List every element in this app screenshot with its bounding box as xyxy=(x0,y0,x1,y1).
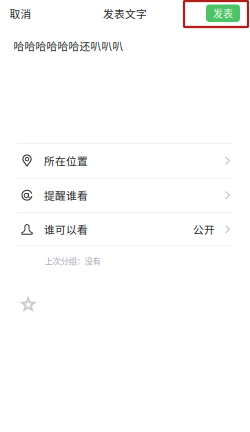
button[interactable]: 提醒谁看 xyxy=(0,178,250,212)
button[interactable]: 所在位置 xyxy=(0,144,250,177)
staticText: 发表文字 xyxy=(103,5,147,21)
staticText: 哈哈哈哈哈哈还叭叭叭 xyxy=(13,38,123,53)
staticText: 所在位置 xyxy=(44,153,88,168)
button[interactable]: 取消 xyxy=(0,0,39,26)
staticText: 发表 xyxy=(213,6,233,20)
staticText: 公开 xyxy=(193,221,215,237)
staticText: 上次分组：没有 xyxy=(44,254,100,267)
staticText: 谁可以看 xyxy=(44,221,88,237)
button[interactable]: Favourite xyxy=(0,267,43,317)
staticText: 取消 xyxy=(9,5,31,21)
button[interactable]: 谁可以看 xyxy=(0,213,250,245)
staticText: 提醒谁看 xyxy=(44,187,88,203)
button[interactable]: 发表 xyxy=(206,4,240,22)
